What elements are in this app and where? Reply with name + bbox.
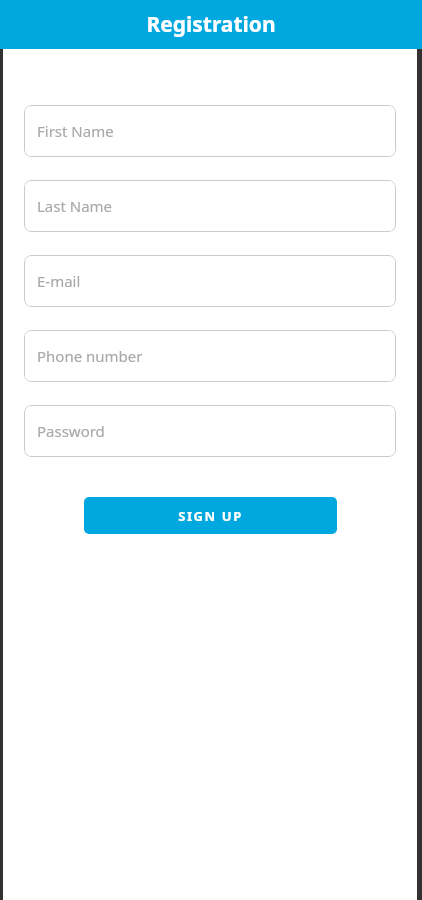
staticText: Password — [37, 421, 105, 441]
button[interactable]: First Name — [24, 105, 396, 157]
staticText: E-mail — [37, 271, 81, 291]
button[interactable]: Phone number — [24, 330, 396, 382]
button[interactable]: SIGN UP — [84, 497, 337, 534]
button[interactable]: E-mail — [24, 255, 396, 307]
staticText: SIGN UP — [178, 507, 243, 525]
staticText: Phone number — [37, 346, 143, 366]
staticText: First Name — [37, 121, 114, 141]
button[interactable]: Password — [24, 405, 396, 457]
staticText: Last Name — [37, 196, 113, 216]
button[interactable]: Last Name — [24, 180, 396, 232]
staticText: Registration — [146, 10, 276, 39]
